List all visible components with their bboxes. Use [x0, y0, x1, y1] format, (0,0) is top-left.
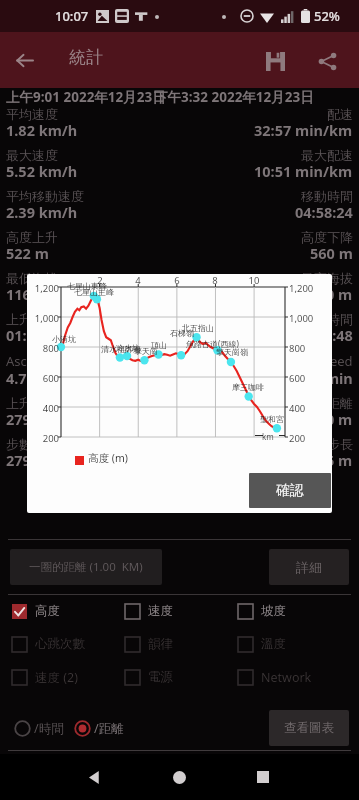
staticText: 統計	[69, 47, 103, 68]
button[interactable]: Save	[258, 44, 292, 78]
staticText: 上升時間	[6, 311, 58, 327]
button[interactable]: Network	[238, 669, 351, 686]
button[interactable]: 坡度	[238, 603, 351, 619]
button[interactable]: 高度	[12, 603, 125, 619]
button[interactable]: 心跳次數	[12, 636, 125, 652]
staticText: 高度	[35, 603, 60, 619]
staticText: 04:58:24	[295, 202, 353, 222]
button[interactable]: Back	[8, 44, 40, 76]
staticText: 一圈的距離 (1.00 KM)	[29, 559, 143, 575]
staticText: 32:57 min/km	[254, 120, 353, 140]
staticText: 2	[92, 274, 108, 287]
staticText: 4	[130, 274, 146, 287]
button[interactable]: Back	[83, 765, 107, 789]
button[interactable]: /距離	[72, 716, 126, 741]
staticText: 摩三咖啡	[232, 382, 264, 392]
staticText: 4.12 m/min	[272, 368, 353, 388]
staticText: 溫度	[261, 636, 286, 652]
staticText: 1,000	[28, 312, 59, 325]
button[interactable]: 一圈的距離 (1.00 KM)	[10, 549, 162, 585]
staticText: 坡度	[261, 603, 286, 619]
staticText: Descent speed	[263, 352, 353, 370]
staticText: 電源	[148, 669, 173, 685]
staticText: 移動時間	[301, 188, 353, 204]
staticText: 擎天崗嶺	[216, 347, 248, 357]
staticText: 2.39 km/h	[6, 202, 78, 222]
staticText: 522 m	[6, 243, 49, 263]
staticText: 最大速度	[6, 147, 58, 163]
staticText: 七星山東峰	[67, 281, 107, 291]
staticText: 1,200	[289, 282, 329, 295]
staticText: 4.78 m/min	[6, 368, 87, 388]
button[interactable]: Recents	[251, 765, 275, 789]
staticText: 擎天崗	[134, 346, 158, 356]
staticText: 800	[28, 342, 59, 355]
button[interactable]: /時間	[12, 716, 66, 741]
staticText: 步數	[6, 436, 32, 452]
staticText: Network	[261, 669, 312, 686]
button[interactable]: 溫度	[238, 636, 351, 652]
staticText: 北五指山	[182, 323, 214, 333]
staticText: 52%	[314, 7, 340, 25]
staticText: 七星山主峰	[74, 287, 114, 297]
staticText: 平均速度	[6, 106, 58, 122]
staticText: 清水祖師廟	[101, 344, 141, 354]
staticText: /時間	[34, 720, 64, 737]
staticText: 最高海拔	[301, 270, 353, 286]
staticText: 10	[246, 274, 262, 287]
staticText: 心跳次數	[35, 636, 85, 652]
staticText: km	[262, 431, 274, 442]
staticText: 速度	[148, 603, 173, 619]
button[interactable]: 確認	[249, 473, 331, 508]
staticText: 高度上升	[6, 229, 58, 245]
staticText: 速度 (2)	[35, 669, 78, 686]
staticText: 冷水坑	[116, 343, 140, 353]
staticText: 聖和宮	[260, 414, 284, 424]
button[interactable]: 查看圖表	[269, 710, 349, 746]
button[interactable]: 速度 (2)	[12, 669, 125, 686]
staticText: 560 m	[310, 243, 353, 263]
staticText: 韻律	[148, 636, 173, 652]
staticText: 01:48:33	[6, 325, 64, 345]
staticText: 2793 m	[6, 409, 58, 429]
staticText: 10:07	[55, 7, 89, 25]
staticText: 5.52 km/h	[6, 161, 78, 181]
staticText: 3140 m	[301, 409, 353, 429]
staticText: 10:51 min/km	[254, 161, 353, 181]
staticText: 200	[28, 432, 59, 445]
staticText: 魚路古道(西線)	[186, 338, 239, 349]
staticText: 步長	[327, 436, 353, 452]
staticText: 詳細	[296, 559, 322, 575]
staticText: 石梯嶺	[170, 328, 194, 338]
staticText: 最低海拔	[6, 270, 58, 286]
button[interactable]: Share	[310, 44, 344, 78]
staticText: 0.425 m	[297, 450, 353, 470]
button[interactable]: 詳細	[269, 549, 349, 585]
staticText: 上升距離	[6, 395, 58, 411]
staticText: 平均移動速度	[6, 188, 84, 204]
staticText: 最大配速	[301, 147, 353, 163]
button[interactable]: 韻律	[125, 636, 238, 652]
staticText: 400	[28, 402, 59, 415]
staticText: 02:15:48	[295, 325, 353, 345]
staticText: 1.82 km/h	[6, 120, 78, 140]
staticText: 200	[289, 432, 329, 445]
staticText: 8	[207, 274, 223, 287]
staticText: 6	[169, 274, 185, 287]
staticText: 頂山	[151, 340, 167, 350]
staticText: 27993	[6, 450, 48, 470]
button[interactable]: 電源	[125, 669, 238, 685]
staticText: 1160 m	[301, 284, 353, 304]
staticText: 高度下降	[301, 229, 353, 245]
staticText: Ascent speed	[6, 352, 88, 370]
staticText: /距離	[94, 720, 124, 737]
button[interactable]: Home	[167, 765, 191, 789]
button[interactable]: 速度	[125, 603, 238, 619]
staticText: 確認	[276, 482, 304, 500]
staticText: 配速	[327, 106, 353, 122]
staticText: 1,000	[289, 312, 329, 325]
staticText: 下午3:32 2022年12月23日	[154, 88, 314, 106]
staticText: 600	[28, 372, 59, 385]
staticText: 高度 (m)	[88, 451, 128, 465]
staticText: 600	[289, 372, 329, 385]
